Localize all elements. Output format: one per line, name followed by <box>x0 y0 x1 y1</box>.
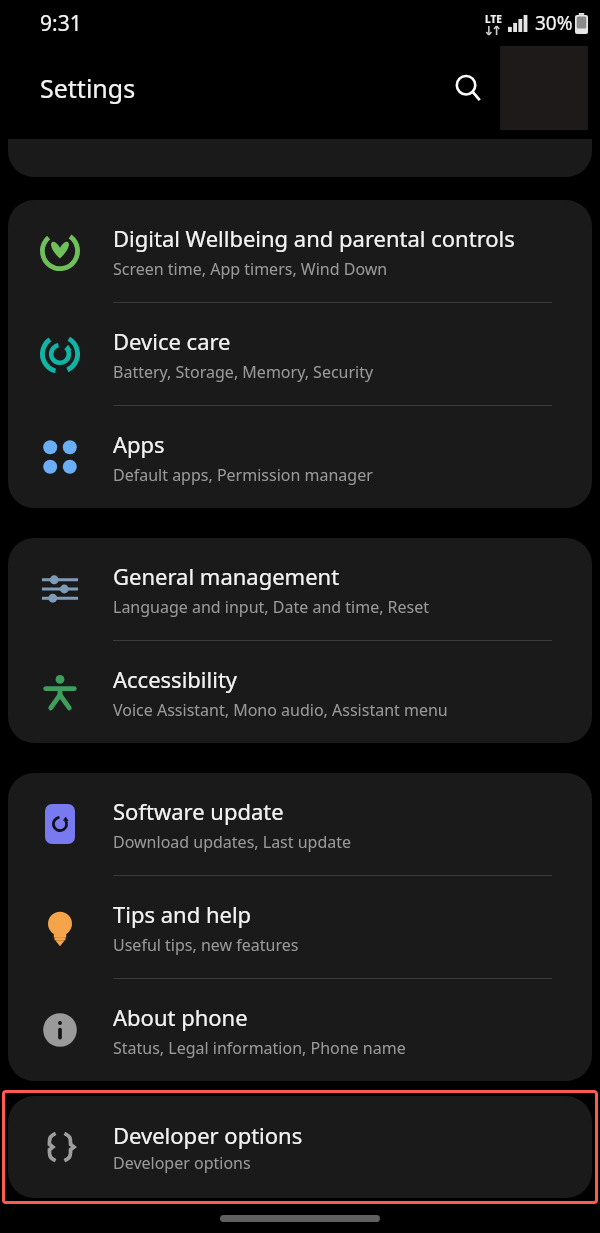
button[interactable]: General management <box>8 538 592 640</box>
staticText: Accessibility <box>113 664 238 694</box>
button[interactable]: Digital Wellbeing and parental controls <box>8 200 592 302</box>
staticText: Device care <box>113 326 231 356</box>
staticText: 9:31 <box>40 9 82 38</box>
button[interactable]: Search <box>444 64 492 112</box>
staticText: Developer options <box>113 1152 251 1174</box>
staticText: General management <box>113 561 340 591</box>
button[interactable]: Tips and help <box>8 876 592 978</box>
staticText: LTE <box>485 12 502 26</box>
staticText: Battery, Storage, Memory, Security <box>113 361 374 383</box>
staticText: Useful tips, new features <box>113 934 299 956</box>
staticText: Apps <box>113 429 165 459</box>
button[interactable]: Developer options <box>8 1096 592 1198</box>
staticText: 30% <box>535 10 573 36</box>
staticText: Download updates, Last update <box>113 831 352 853</box>
staticText: Screen time, App timers, Wind Down <box>113 258 388 280</box>
staticText: Settings <box>40 71 136 105</box>
staticText: Digital Wellbeing and parental controls <box>113 223 515 253</box>
button[interactable]: About phone <box>8 979 592 1081</box>
staticText: Developer options <box>113 1120 303 1150</box>
staticText: About phone <box>113 1002 248 1032</box>
staticText: Voice Assistant, Mono audio, Assistant m… <box>113 699 448 721</box>
staticText: Software update <box>113 796 284 826</box>
staticText: Default apps, Permission manager <box>113 464 373 486</box>
button[interactable]: Accessibility <box>8 641 592 743</box>
button[interactable]: Software update <box>8 773 592 875</box>
staticText: Status, Legal information, Phone name <box>113 1037 406 1059</box>
staticText: Language and input, Date and time, Reset <box>113 596 430 618</box>
staticText: Tips and help <box>113 899 252 929</box>
button[interactable]: Apps <box>8 406 592 508</box>
button[interactable]: Device care <box>8 303 592 405</box>
